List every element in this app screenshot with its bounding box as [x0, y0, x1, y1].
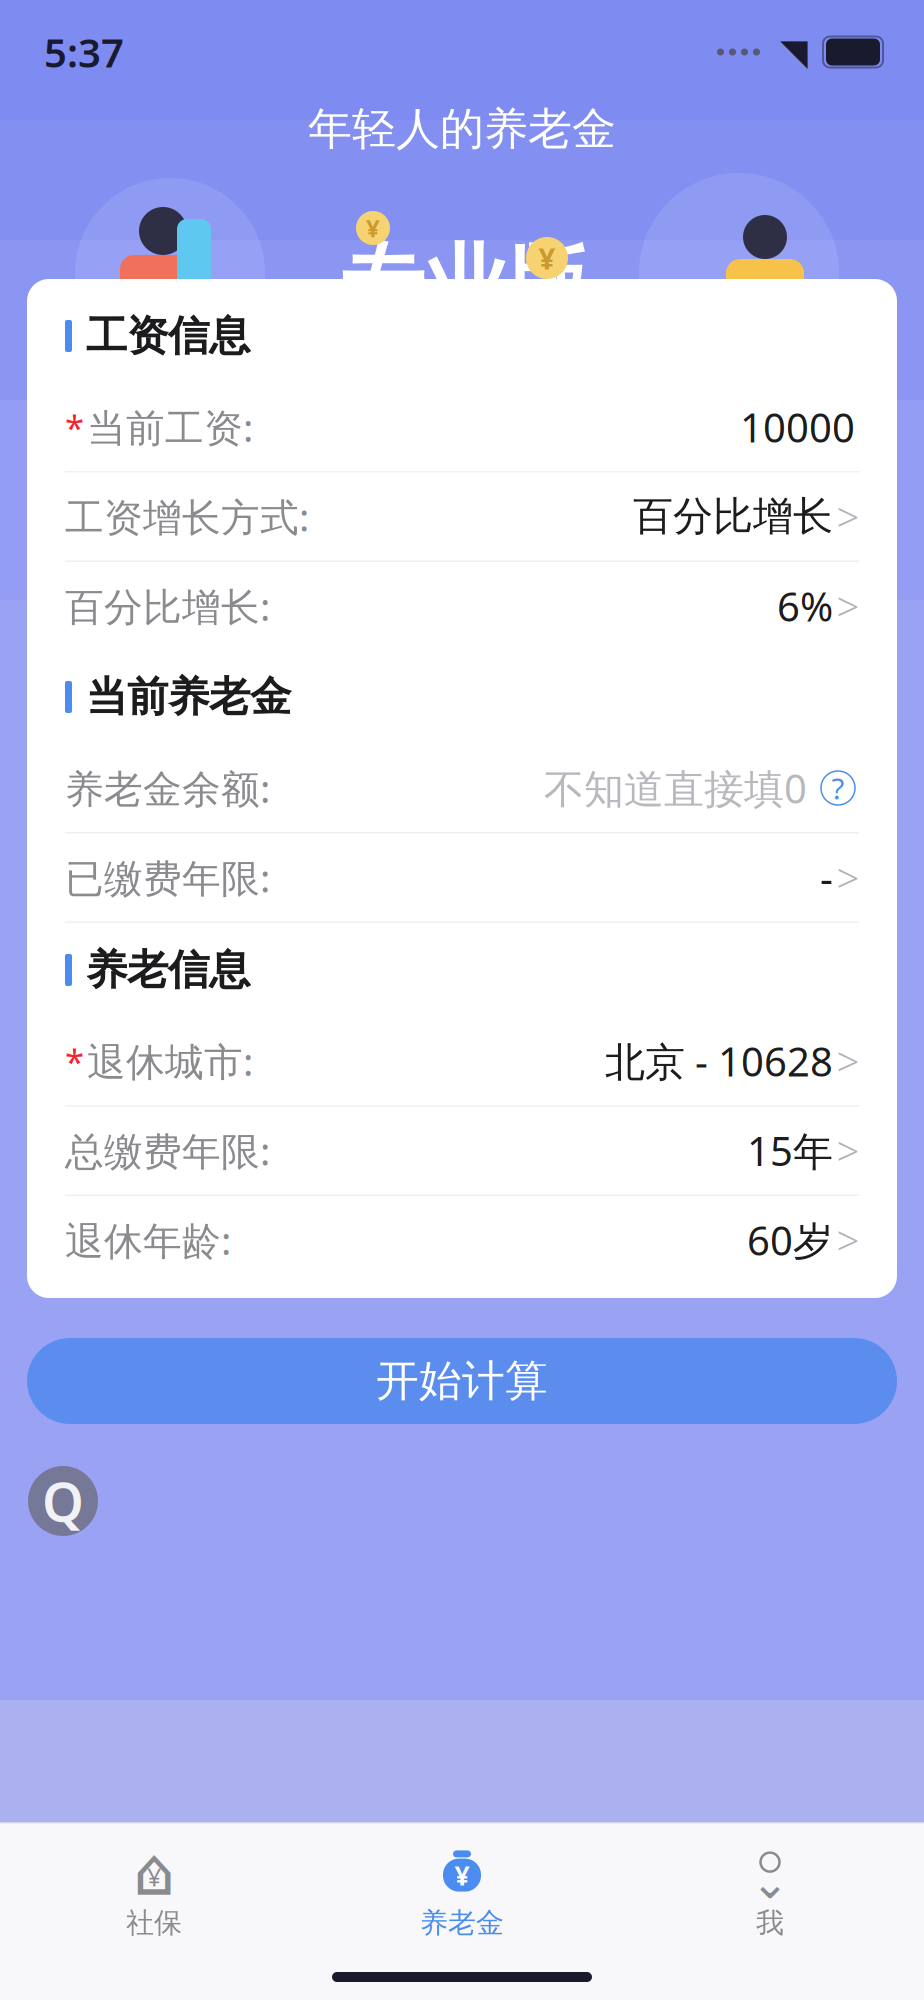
staticText: 15年	[747, 1124, 833, 1177]
button[interactable]: *	[27, 1017, 897, 1105]
button[interactable]: 百分比增长:	[27, 562, 897, 650]
button[interactable]: 已缴费年限:	[27, 833, 897, 921]
button[interactable]: 总缴费年限:	[27, 1106, 897, 1194]
staticText: 百分比增长	[633, 492, 833, 541]
staticText: 养老金余额:	[65, 762, 270, 814]
staticText: 当前养老金	[86, 672, 291, 722]
button[interactable]: *	[27, 383, 897, 471]
staticText: 我	[756, 1906, 784, 1940]
button[interactable]: QQ 客服	[28, 1466, 98, 1536]
staticText: 年轻人的养老金	[308, 102, 616, 156]
button[interactable]: 退休年龄:	[27, 1196, 897, 1284]
staticText: *	[65, 404, 84, 450]
staticText: 5:37	[44, 25, 124, 78]
staticText: ¥	[538, 238, 555, 277]
staticText: 专业版	[341, 233, 590, 335]
staticText: Q	[42, 1466, 84, 1536]
staticText: 6%	[777, 579, 833, 632]
staticText: 总缴费年限:	[65, 1125, 270, 1176]
staticText: 退休城市:	[87, 1035, 253, 1087]
staticText: ◥	[780, 32, 808, 72]
staticText: ¥	[147, 1860, 161, 1893]
staticText: >	[836, 1124, 859, 1177]
staticText: 当前工资:	[87, 401, 253, 453]
button[interactable]: 开始计算	[27, 1338, 897, 1424]
staticText: >	[836, 579, 859, 632]
staticText: 退休年龄:	[65, 1214, 231, 1266]
staticText: >	[836, 1213, 859, 1266]
staticText: *	[65, 1038, 84, 1084]
staticText: 已缴费年限:	[65, 852, 270, 903]
button[interactable]: 工资增长方式:	[27, 472, 897, 560]
staticText: -	[820, 851, 833, 904]
staticText: 社保	[126, 1906, 182, 1940]
staticText: 养老金	[420, 1906, 504, 1940]
button[interactable]: ⌂	[0, 1834, 308, 1952]
staticText: 北京 - 10628	[605, 1034, 833, 1087]
staticText: 开始计算	[376, 1355, 548, 1407]
staticText: ?	[831, 768, 844, 807]
staticText: 工资信息	[86, 311, 250, 361]
staticText: >	[836, 490, 859, 543]
button[interactable]: ¥	[308, 1834, 616, 1952]
staticText: 工资增长方式:	[65, 491, 309, 542]
staticText: ¥	[454, 1857, 469, 1893]
staticText: 10000	[740, 400, 855, 453]
staticText: ¥	[366, 212, 380, 244]
staticText: 不知道直接填0	[544, 761, 807, 814]
staticText: >	[836, 851, 859, 904]
button[interactable]: 养老金余额:	[27, 744, 897, 832]
staticText: 60岁	[747, 1213, 833, 1266]
staticText: 百分比增长:	[65, 580, 270, 632]
staticText: ⌄	[751, 1857, 789, 1908]
staticText: 养老信息	[86, 945, 250, 995]
button[interactable]: ⌄	[616, 1834, 924, 1952]
staticText: >	[836, 1034, 859, 1087]
staticText: ⌂	[133, 1834, 175, 1909]
